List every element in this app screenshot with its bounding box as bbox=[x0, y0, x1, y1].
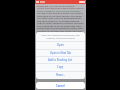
staticText: For other uses, see the disambiguation p… bbox=[37, 16, 85, 19]
staticText: Wikipedia, the free encyclopedia bbox=[38, 37, 83, 40]
staticText: Open bbox=[57, 43, 64, 47]
staticText: Article Talk Read Edit View history Sear… bbox=[37, 6, 85, 9]
button[interactable]: Open bbox=[36, 41, 85, 49]
button[interactable]: Copy bbox=[36, 63, 85, 71]
staticText: See also References External links Categ… bbox=[37, 31, 85, 34]
staticText: and continues to be an important topic t… bbox=[37, 24, 85, 27]
button[interactable]: Open in New Tab bbox=[36, 49, 85, 56]
staticText: used in many different contexts through … bbox=[37, 21, 85, 24]
staticText: Wikipedia, the free encyclopedia bbox=[37, 4, 74, 7]
staticText: Open in New Tab bbox=[50, 51, 72, 55]
staticText: Copy bbox=[57, 65, 64, 69]
staticText: can edit. This article is about the subj… bbox=[37, 11, 85, 14]
staticText: From Wikipedia, the free encyclopedia th… bbox=[37, 9, 85, 12]
staticText: the field in considerable depth and fine… bbox=[37, 29, 85, 32]
staticText: described in the lead section just below… bbox=[37, 14, 85, 17]
staticText: Add to Reading List bbox=[48, 58, 73, 62]
button[interactable]: Share… bbox=[36, 71, 85, 79]
staticText: researchers and practitioners alike, who… bbox=[37, 26, 85, 29]
button[interactable]: Cancel bbox=[36, 82, 85, 89]
staticText: The term refers to a concept that has lo… bbox=[37, 19, 85, 22]
staticText: https://en.m.wikipedia.org/wiki/Main_Pag… bbox=[38, 34, 83, 37]
other: Status bar bbox=[35, 0, 86, 4]
button[interactable]: Add to Reading List bbox=[36, 56, 85, 63]
staticText: Cancel bbox=[56, 84, 65, 88]
staticText: Share… bbox=[56, 73, 66, 77]
